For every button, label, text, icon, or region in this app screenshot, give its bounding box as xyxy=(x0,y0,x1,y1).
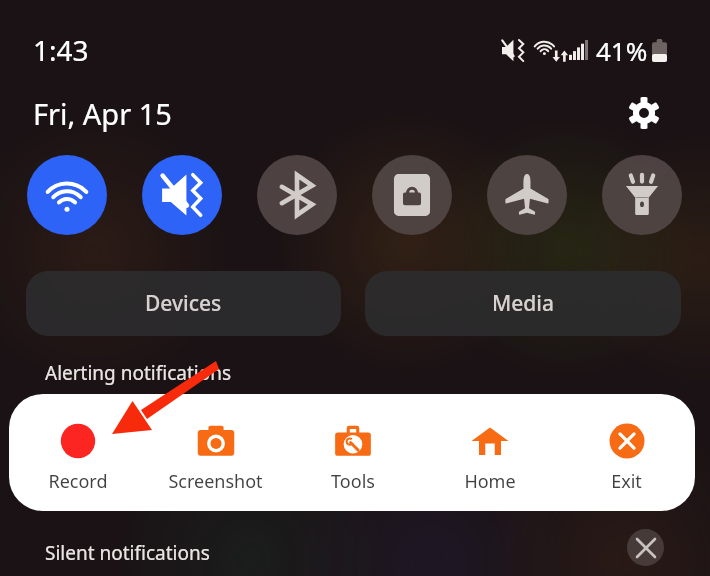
staticText: Record xyxy=(48,469,108,494)
staticText: Devices xyxy=(145,289,222,318)
staticText: Fri, Apr 15 xyxy=(33,94,172,133)
button[interactable]: Exit xyxy=(558,394,695,511)
button[interactable]: Record xyxy=(9,394,147,511)
staticText: Exit xyxy=(611,469,642,494)
button[interactable]: Settings xyxy=(622,91,666,135)
button[interactable]: Tools xyxy=(284,394,421,511)
button[interactable]: Dismiss all notifications xyxy=(627,529,664,566)
staticText: Alerting notifications xyxy=(45,360,232,386)
staticText: 1:43 xyxy=(33,31,89,69)
button[interactable]: Flashlight xyxy=(602,155,682,235)
button[interactable]: Screenshot xyxy=(147,394,284,511)
button[interactable]: Home xyxy=(421,394,558,511)
staticText: 41% xyxy=(596,33,648,68)
staticText: Silent notifications xyxy=(45,540,210,566)
staticText: Screenshot xyxy=(168,469,263,494)
button[interactable]: Devices xyxy=(26,271,341,336)
button[interactable]: Wi-Fi xyxy=(27,155,107,235)
staticText: Tools xyxy=(331,469,375,494)
staticText: Media xyxy=(492,289,555,318)
button[interactable]: Airplane mode xyxy=(487,155,567,235)
button[interactable]: Screen lock xyxy=(372,155,452,235)
button[interactable]: Media xyxy=(365,271,681,336)
button[interactable]: Sound off xyxy=(142,155,222,235)
button[interactable]: Bluetooth xyxy=(257,155,337,235)
staticText: Home xyxy=(464,469,516,494)
